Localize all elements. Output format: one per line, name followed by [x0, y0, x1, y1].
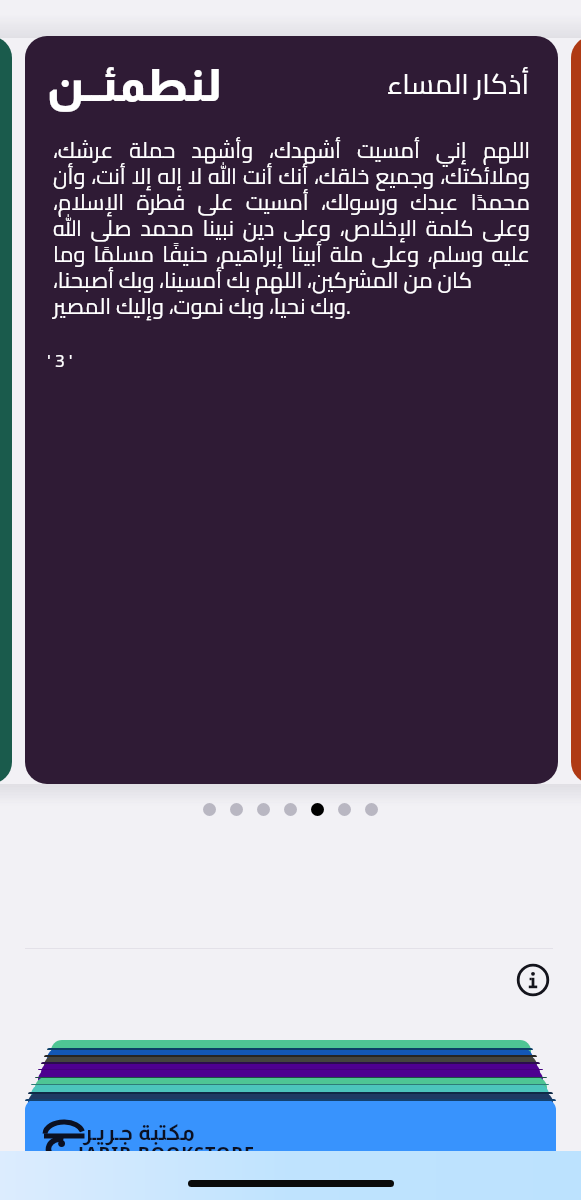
button[interactable] — [311, 803, 324, 816]
button[interactable]: لنطمئــن — [25, 36, 558, 784]
button[interactable] — [25, 1099, 556, 1160]
button[interactable] — [230, 803, 243, 816]
button[interactable] — [365, 803, 378, 816]
staticText: مكتبة جـريـر — [83, 1120, 196, 1145]
staticText: أذكار المساء — [387, 58, 530, 110]
button[interactable] — [203, 803, 216, 816]
button[interactable] — [571, 36, 581, 784]
button[interactable] — [284, 803, 297, 816]
staticText: ' 3 ' — [47, 344, 73, 378]
staticText: لنطمئــن — [47, 60, 222, 110]
button[interactable] — [257, 803, 270, 816]
button[interactable] — [338, 803, 351, 816]
staticText: JARIR BOOKSTORE — [78, 1141, 256, 1166]
staticText: اللهم إني أمسيت أشهدك، وأشهد حملة عرشك، … — [53, 130, 530, 326]
button[interactable] — [0, 36, 12, 784]
button[interactable]: Info — [516, 963, 550, 997]
